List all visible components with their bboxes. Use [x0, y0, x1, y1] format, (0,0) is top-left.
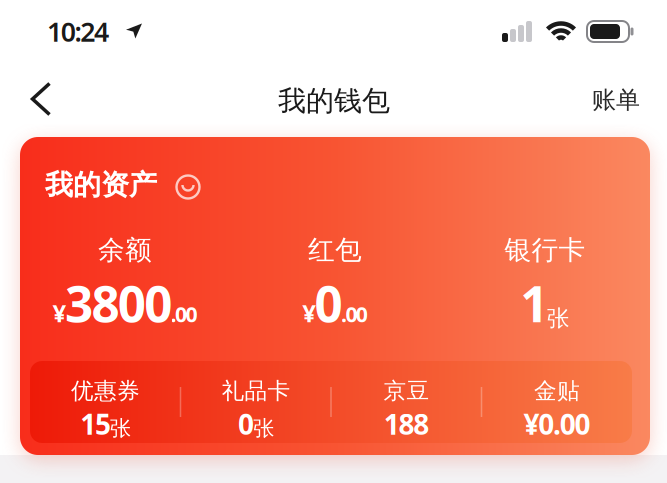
staticText: 优惠券 [71, 377, 140, 405]
staticText: ¥3800.00 [53, 270, 197, 336]
button[interactable]: 礼品卡 [181, 361, 331, 443]
staticText: 15张 [80, 405, 131, 443]
staticText: ¥0.00 [302, 270, 368, 336]
button[interactable]: 红包 [230, 220, 440, 340]
button[interactable]: 隐藏资产 [173, 172, 203, 202]
button[interactable]: 金贴 [482, 361, 632, 443]
staticText: 账单 [592, 85, 640, 115]
button[interactable]: 银行卡 [440, 220, 650, 340]
button[interactable]: 返回 [16, 73, 65, 124]
staticText: 红包 [308, 234, 362, 266]
staticText: 188 [384, 405, 429, 443]
staticText: ¥0.00 [523, 405, 591, 443]
staticText: 1张 [520, 270, 570, 336]
button[interactable]: 京豆 [331, 361, 481, 443]
staticText: 10:24 [47, 14, 109, 49]
button[interactable]: 优惠券 [30, 361, 180, 443]
staticText: 银行卡 [504, 234, 585, 266]
button[interactable]: 余额 [20, 220, 230, 340]
staticText: 我的钱包 [278, 84, 390, 118]
staticText: 礼品卡 [221, 377, 290, 405]
staticText: 余额 [98, 234, 152, 266]
staticText: 我的资产 [45, 168, 157, 202]
staticText: 金贴 [534, 377, 580, 405]
staticText: 0张 [238, 405, 274, 443]
button[interactable]: 账单 [580, 75, 652, 125]
staticText: 京豆 [383, 377, 429, 405]
